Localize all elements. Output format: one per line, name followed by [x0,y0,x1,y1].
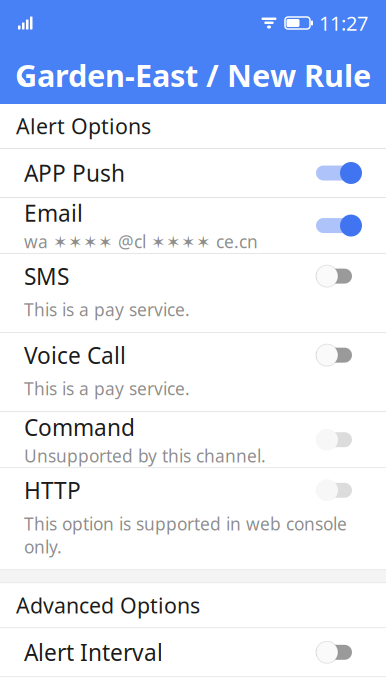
staticText: Advanced Options [16,591,200,619]
button[interactable]: Email [0,198,386,253]
staticText: Alert Options [16,112,151,140]
staticText: 11:27 [319,10,368,36]
staticText: wa ✶✶✶✶ @cl ✶✶✶✶ ce.cn [24,230,258,253]
staticText: This is a pay service. [24,377,190,400]
staticText: Garden-East / New Rule [15,55,371,95]
staticText: Unsupported by this channel. [24,444,266,467]
staticText: This is a pay service. [24,298,190,321]
staticText: This option is supported in web console … [24,512,347,558]
button[interactable]: Command [0,412,386,467]
staticText: APP Push [24,158,125,188]
staticText: HTTP [24,475,81,505]
button[interactable]: SMS [0,254,386,298]
button[interactable]: APP Push [0,149,386,197]
button[interactable]: Voice Call [0,333,386,377]
staticText: Alert Interval [24,637,163,667]
staticText: Voice Call [24,340,126,370]
button[interactable]: Alert Interval [0,628,386,676]
staticText: SMS [24,261,69,291]
button[interactable]: Back [0,51,44,99]
button[interactable]: HTTP [0,468,386,512]
staticText: Email [24,198,83,228]
staticText: Command [24,412,135,442]
